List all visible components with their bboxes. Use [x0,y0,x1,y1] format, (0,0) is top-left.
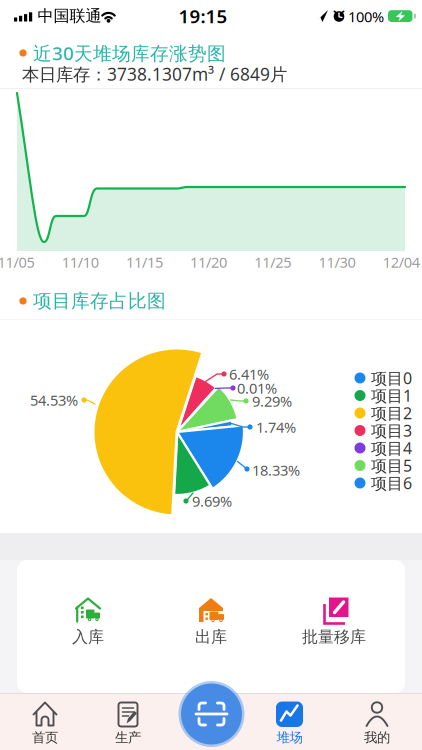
staticText: 19:15 [178,4,227,28]
staticText: 批量移库 [302,627,366,647]
staticText: 入库 [72,627,104,647]
staticText: 0.01% [237,378,277,398]
staticText: 18.33% [252,460,300,480]
staticText: 11/05 [0,252,34,272]
staticText: 9.29% [252,391,292,411]
staticText: 项目6 [371,472,412,494]
staticText: 我的 [364,729,390,746]
staticText: 项目库存占比图 [33,289,166,312]
staticText: 项目2 [371,402,412,424]
staticText: 项目5 [371,455,412,476]
staticText: 堆场 [276,729,302,746]
staticText: 1.74% [256,417,296,437]
staticText: 11/30 [318,252,355,272]
staticText: 本日库存：3738.1307m³ / 6849片 [22,62,287,85]
staticText: 11/10 [62,252,99,272]
staticText: 100% [348,7,384,26]
staticText: 项目1 [371,385,412,406]
staticText: 项目3 [371,420,412,441]
staticText: 11/20 [190,252,227,272]
staticText: 近30天堆场库存涨势图 [33,41,226,65]
staticText: 首页 [32,729,58,746]
staticText: 9.69% [192,491,232,511]
staticText: 中国联通 [37,6,101,26]
staticText: 项目4 [371,437,412,459]
staticText: 6.41% [229,364,269,384]
staticText: 11/15 [126,252,163,272]
staticText: 54.53% [30,390,78,410]
staticText: 12/04 [383,252,420,272]
staticText: 出库 [195,627,227,647]
staticText: 项目0 [371,367,412,389]
staticText: 11/25 [254,252,291,272]
staticText: 生产 [115,729,141,746]
